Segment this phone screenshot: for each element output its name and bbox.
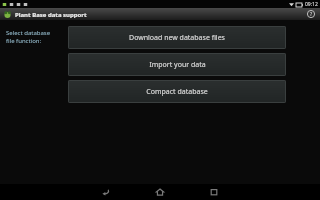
button[interactable]: Help bbox=[306, 9, 316, 19]
staticText: Import your data bbox=[149, 60, 206, 70]
button[interactable]: Download new database files bbox=[68, 26, 286, 49]
button[interactable]: Back bbox=[89, 184, 123, 200]
button[interactable]: Import your data bbox=[68, 53, 286, 76]
staticText: Compact database bbox=[146, 87, 208, 97]
button[interactable]: Compact database bbox=[68, 80, 286, 103]
staticText: Download new database files bbox=[129, 33, 225, 43]
staticText: 09:12 bbox=[305, 1, 318, 8]
button[interactable]: Home bbox=[143, 184, 177, 200]
staticText: Select database file function: bbox=[6, 29, 51, 45]
button[interactable]: Recents bbox=[197, 184, 231, 200]
staticText: ? bbox=[310, 11, 313, 18]
staticText: Plant Base data support bbox=[15, 11, 87, 19]
